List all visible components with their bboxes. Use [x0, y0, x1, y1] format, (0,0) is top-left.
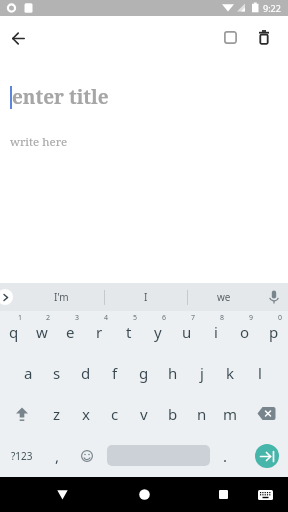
- staticText: l: [258, 363, 262, 383]
- staticText: g: [139, 363, 149, 383]
- staticText: n: [197, 404, 207, 424]
- button[interactable]: [0, 393, 43, 434]
- button[interactable]: s: [42, 352, 71, 393]
- staticText: y: [154, 322, 162, 342]
- button[interactable]: I'm: [0, 283, 104, 311]
- button[interactable]: [260, 283, 288, 311]
- button[interactable]: d: [71, 352, 100, 393]
- button[interactable]: q: [0, 311, 28, 352]
- button[interactable]: [72, 434, 101, 477]
- staticText: 5: [133, 313, 138, 323]
- staticText: 2: [46, 313, 51, 323]
- button[interactable]: l: [245, 352, 274, 393]
- staticText: u: [182, 322, 192, 342]
- staticText: f: [112, 363, 118, 383]
- button[interactable]: [245, 434, 288, 477]
- staticText: I'm: [54, 290, 69, 304]
- button[interactable]: z: [43, 393, 71, 434]
- staticText: ,: [55, 446, 60, 466]
- button[interactable]: u: [172, 311, 201, 352]
- button[interactable]: ,: [43, 434, 72, 477]
- button[interactable]: b: [158, 393, 187, 434]
- button[interactable]: [214, 21, 247, 54]
- staticText: h: [168, 363, 178, 383]
- button[interactable]: w: [28, 311, 56, 352]
- staticText: ?123: [11, 449, 33, 463]
- staticText: we: [217, 290, 231, 304]
- button[interactable]: r: [85, 311, 114, 352]
- staticText: a: [24, 363, 33, 383]
- staticText: w: [36, 322, 48, 342]
- staticText: I: [144, 290, 148, 304]
- staticText: 1: [18, 313, 23, 323]
- staticText: write here: [10, 134, 68, 150]
- staticText: j: [200, 363, 204, 383]
- button[interactable]: i: [201, 311, 230, 352]
- staticText: v: [140, 404, 148, 424]
- button[interactable]: p: [259, 311, 288, 352]
- button[interactable]: o: [230, 311, 259, 352]
- staticText: t: [126, 322, 132, 342]
- button[interactable]: c: [100, 393, 129, 434]
- staticText: p: [269, 322, 279, 342]
- staticText: o: [240, 322, 250, 342]
- button[interactable]: [42, 477, 82, 512]
- staticText: k: [226, 363, 235, 383]
- staticText: d: [81, 363, 91, 383]
- staticText: 7: [191, 313, 196, 323]
- staticText: q: [9, 322, 19, 342]
- button[interactable]: m: [216, 393, 245, 434]
- button[interactable]: [124, 477, 164, 512]
- button[interactable]: v: [129, 393, 158, 434]
- staticText: 9:22: [263, 2, 281, 14]
- button[interactable]: we: [188, 283, 260, 311]
- staticText: z: [53, 404, 61, 424]
- staticText: c: [111, 404, 119, 424]
- button[interactable]: [107, 434, 210, 477]
- staticText: x: [82, 404, 90, 424]
- button[interactable]: [0, 289, 13, 305]
- button[interactable]: e: [56, 311, 85, 352]
- button[interactable]: k: [216, 352, 245, 393]
- button[interactable]: f: [100, 352, 129, 393]
- staticText: 8: [220, 313, 225, 323]
- button[interactable]: I: [105, 283, 187, 311]
- staticText: 4: [104, 313, 109, 323]
- staticText: 6: [162, 313, 167, 323]
- button[interactable]: ?123: [0, 434, 43, 477]
- button[interactable]: x: [71, 393, 100, 434]
- button[interactable]: j: [187, 352, 216, 393]
- staticText: 9: [249, 313, 254, 323]
- staticText: enter title: [12, 84, 109, 110]
- staticText: e: [66, 322, 75, 342]
- button[interactable]: [247, 21, 280, 54]
- button[interactable]: [243, 477, 288, 512]
- staticText: b: [168, 404, 178, 424]
- button[interactable]: [245, 393, 288, 434]
- staticText: i: [214, 322, 218, 342]
- button[interactable]: y: [143, 311, 172, 352]
- staticText: r: [96, 322, 103, 342]
- button[interactable]: a: [14, 352, 42, 393]
- staticText: .: [223, 446, 228, 466]
- staticText: m: [223, 404, 238, 424]
- button[interactable]: [4, 24, 32, 52]
- button[interactable]: t: [114, 311, 143, 352]
- button[interactable]: .: [216, 434, 245, 477]
- staticText: 0: [278, 313, 283, 323]
- button[interactable]: h: [158, 352, 187, 393]
- button[interactable]: n: [187, 393, 216, 434]
- button[interactable]: g: [129, 352, 158, 393]
- button[interactable]: [203, 477, 243, 512]
- staticText: 3: [75, 313, 80, 323]
- staticText: s: [53, 363, 61, 383]
